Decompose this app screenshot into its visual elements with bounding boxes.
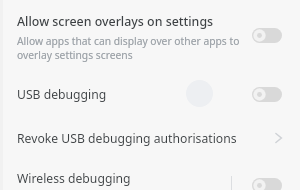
button[interactable]: Revoke USB debugging authorisations <box>0 118 300 158</box>
staticText: Allow screen overlays on settings <box>17 13 214 30</box>
button[interactable]: USB debugging <box>0 74 300 114</box>
staticText: Allow apps that can display over other a… <box>17 34 240 62</box>
other: Open <box>272 130 285 146</box>
button[interactable]: USB debugging <box>252 87 282 102</box>
staticText: Revoke USB debugging authorisations <box>17 130 237 147</box>
button[interactable]: Allow screen overlays on settings <box>252 28 282 43</box>
button[interactable]: Wireless debugging <box>0 160 300 190</box>
staticText: Wireless debugging <box>17 170 131 187</box>
button[interactable]: Allow screen overlays on settings <box>0 2 300 70</box>
staticText: USB debugging <box>17 86 107 103</box>
button[interactable]: Wireless debugging <box>252 178 282 190</box>
